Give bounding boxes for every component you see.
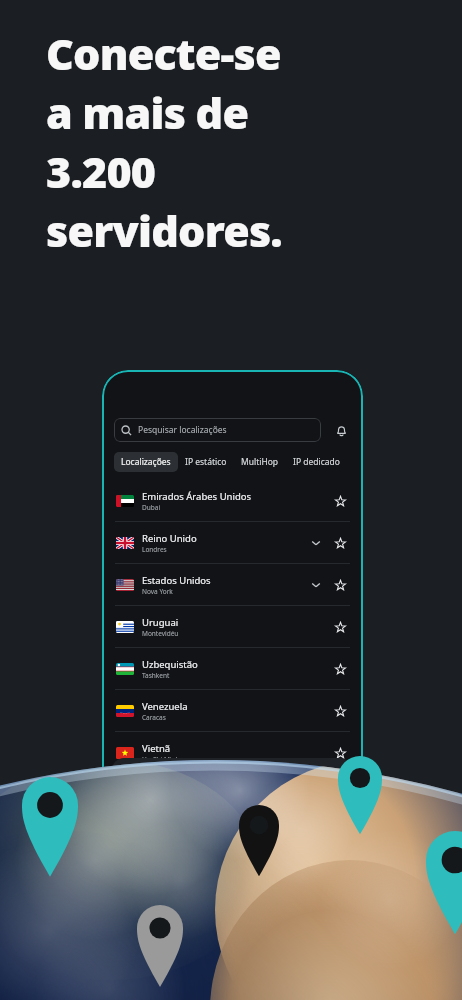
staticText: Emirados Árabes Unidos	[142, 490, 252, 503]
staticText: servidores.	[46, 201, 282, 260]
button[interactable]: Localizações	[114, 452, 178, 472]
button[interactable]: Favoritar	[331, 534, 349, 552]
staticText: Ho Chi Minh	[142, 755, 180, 764]
button[interactable]: Favoritar	[331, 702, 349, 720]
staticText: Vietnã	[142, 742, 171, 755]
button[interactable]: Venezuela	[102, 690, 363, 731]
staticText: a mais de	[46, 83, 249, 142]
button[interactable]: Emirados Árabes Unidos	[102, 480, 363, 521]
button[interactable]: Favoritar	[331, 576, 349, 594]
staticText: Estados Unidos	[142, 574, 211, 587]
button[interactable]: Pesquisar localizações	[114, 418, 321, 442]
staticText: Conecte-se	[46, 24, 281, 83]
staticText: Londres	[142, 545, 167, 554]
staticText: Reino Unido	[142, 532, 197, 545]
button[interactable]: Expandir	[307, 534, 325, 552]
button[interactable]: Favoritar	[331, 618, 349, 636]
staticText: IP estático	[185, 456, 227, 468]
button[interactable]: Estados Unidos	[102, 564, 363, 605]
staticText: Tashkent	[142, 671, 170, 680]
button[interactable]: IP dedicado	[286, 452, 347, 472]
button[interactable]: Notificações	[331, 420, 351, 440]
staticText: Uruguai	[142, 616, 179, 629]
staticText: Caracas	[142, 713, 166, 722]
staticText: IP dedicado	[293, 456, 340, 468]
button[interactable]: Reino Unido	[102, 522, 363, 563]
button[interactable]: Expandir	[307, 576, 325, 594]
button[interactable]: Favoritar	[331, 492, 349, 510]
staticText: Localizações	[121, 456, 171, 468]
button[interactable]: Favoritar	[331, 660, 349, 678]
staticText: Venezuela	[142, 700, 188, 713]
staticText: Nova York	[142, 587, 173, 596]
button[interactable]: Uruguai	[102, 606, 363, 647]
button[interactable]: Favoritar	[331, 744, 349, 762]
staticText: MultiHop	[241, 456, 279, 468]
button[interactable]: MultiHop	[234, 452, 286, 472]
staticText: Uzbequistão	[142, 658, 198, 671]
button[interactable]: Uzbequistão	[102, 648, 363, 689]
staticText: 3.200	[46, 142, 156, 201]
button[interactable]: IP estático	[178, 452, 234, 472]
button[interactable]: Vietnã	[102, 732, 363, 773]
staticText: Montevidéu	[142, 629, 179, 638]
staticText: Dubai	[142, 503, 161, 512]
staticText: Pesquisar localizações	[138, 424, 227, 436]
